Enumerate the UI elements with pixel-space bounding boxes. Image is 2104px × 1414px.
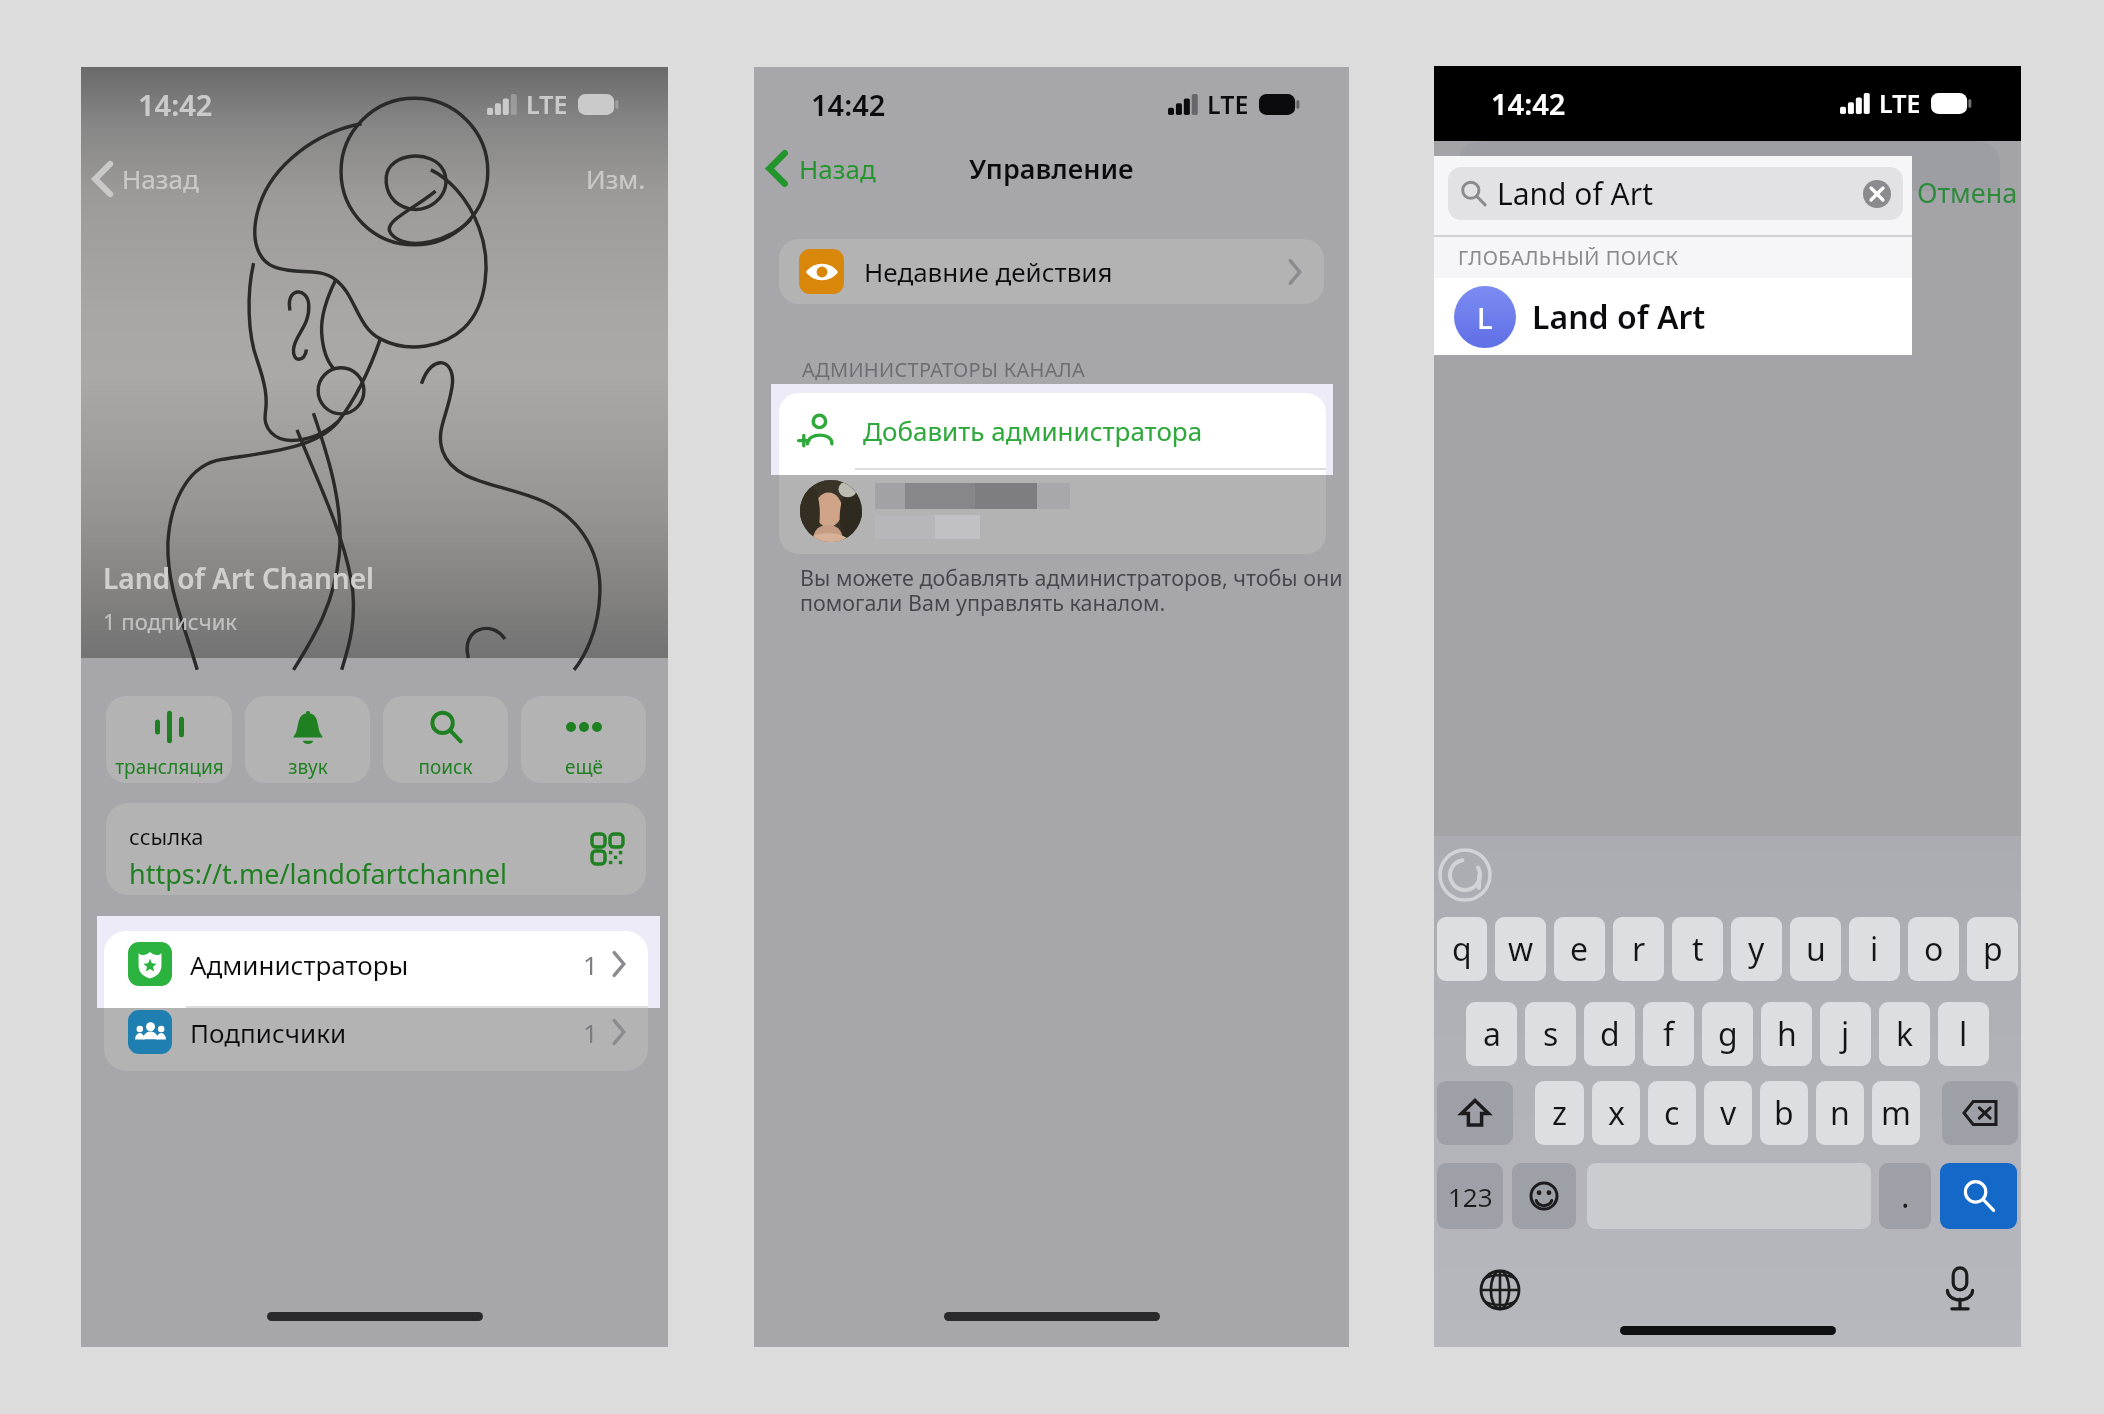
staticText: . [1901, 1174, 1910, 1218]
button[interactable]: j [1820, 1002, 1871, 1066]
staticText: i [1870, 927, 1879, 971]
button[interactable]: Назад [766, 151, 878, 186]
staticText: Администраторы [190, 947, 409, 982]
button[interactable]: n [1816, 1081, 1864, 1145]
staticText: p [1983, 927, 2003, 971]
button[interactable]: q [1437, 917, 1487, 981]
staticText: Изм. [586, 161, 646, 196]
staticText: 1 подписчик [103, 606, 237, 636]
staticText: x [1608, 1091, 1625, 1135]
staticText: n [1830, 1091, 1850, 1135]
button[interactable]: Dictate [1932, 1258, 1988, 1320]
button[interactable]: s [1525, 1002, 1576, 1066]
staticText: ещё [565, 754, 603, 780]
button[interactable]: u [1790, 917, 1841, 981]
button[interactable]: Search [1940, 1163, 2017, 1229]
button[interactable]: p [1967, 917, 2018, 981]
button[interactable]: Администраторы [104, 931, 648, 997]
staticText: j [1841, 1012, 1850, 1056]
staticText: 1 [583, 947, 598, 982]
button[interactable]: Add admin [779, 393, 1326, 468]
other: Add admin [797, 411, 837, 451]
button[interactable]: Назад [92, 161, 201, 196]
staticText: LTE [1879, 86, 1921, 120]
staticText: 14:42 [811, 85, 886, 124]
button[interactable]: b [1760, 1081, 1808, 1145]
button[interactable]: трансляция [106, 696, 232, 783]
button[interactable]: Недавние действия [779, 239, 1324, 304]
button[interactable]: Clear search [1863, 180, 1891, 208]
button[interactable]: f [1643, 1002, 1694, 1066]
staticText: Добавить администратора [863, 413, 1203, 448]
button[interactable]: Подписчики [104, 999, 648, 1065]
staticText: r [1632, 927, 1646, 971]
button[interactable]: z [1535, 1081, 1584, 1145]
button[interactable]: t [1672, 917, 1723, 981]
staticText: e [1570, 927, 1589, 971]
staticText: b [1774, 1091, 1794, 1135]
button[interactable]: Emoji [1512, 1163, 1576, 1229]
staticText: Назад [122, 161, 199, 196]
staticText: Управление [969, 150, 1134, 187]
staticText: Администраторы [190, 947, 409, 982]
staticText: поиск [418, 754, 473, 780]
staticText: LTE [1207, 87, 1249, 121]
staticText: z [1552, 1091, 1568, 1135]
button[interactable]: a [1466, 1002, 1517, 1066]
staticText: a [1483, 1012, 1501, 1056]
button[interactable]: Изм. [586, 161, 646, 196]
button[interactable]: ссылка [106, 803, 646, 895]
staticText: v [1720, 1091, 1737, 1135]
button[interactable]: m [1872, 1081, 1920, 1145]
button[interactable]: звук [245, 696, 370, 783]
button[interactable] [779, 468, 1326, 554]
button[interactable]: v [1704, 1081, 1752, 1145]
staticText: трансляция [115, 754, 224, 780]
staticText: Недавние действия [864, 254, 1113, 289]
button[interactable]: o [1908, 917, 1959, 981]
button[interactable]: 123 [1437, 1163, 1503, 1229]
button[interactable]: Land of Art [1448, 167, 1903, 220]
staticText: f [1663, 1012, 1675, 1056]
button[interactable]: Change keyboard [1472, 1262, 1528, 1318]
button[interactable]: Backspace [1942, 1081, 2018, 1145]
button[interactable]: L [1434, 278, 1912, 355]
button[interactable]: h [1761, 1002, 1812, 1066]
button[interactable]: ещё [521, 696, 646, 783]
button[interactable]: . [1879, 1163, 1931, 1229]
staticText: c [1664, 1091, 1680, 1135]
staticText: g [1718, 1012, 1738, 1056]
staticText: o [1924, 927, 1944, 971]
button[interactable]: k [1879, 1002, 1930, 1066]
button[interactable]: Отмена [1917, 174, 2018, 211]
button[interactable]: c [1648, 1081, 1696, 1145]
staticText: q [1452, 927, 1472, 971]
staticText: звук [288, 754, 328, 780]
button[interactable]: x [1592, 1081, 1640, 1145]
staticText: y [1748, 927, 1765, 971]
button[interactable]: поиск [383, 696, 508, 783]
staticText: L [1477, 298, 1493, 337]
button[interactable]: Shift [1437, 1081, 1513, 1145]
button[interactable]: g [1702, 1002, 1753, 1066]
staticText: АДМИНИСТРАТОРЫ КАНАЛА [802, 356, 1086, 383]
button[interactable]: Show QR code [580, 822, 634, 876]
button[interactable]: y [1731, 917, 1782, 981]
button[interactable]: i [1849, 917, 1900, 981]
staticText: 14:42 [138, 85, 213, 124]
staticText: Отмена [1917, 174, 2018, 211]
staticText: Вы можете добавлять администраторов, что… [800, 563, 1348, 617]
button[interactable]: r [1613, 917, 1664, 981]
button[interactable]: w [1495, 917, 1546, 981]
staticText: Land of Art [1497, 173, 1653, 214]
button[interactable]: l [1938, 1002, 1989, 1066]
button[interactable]: d [1584, 1002, 1635, 1066]
staticText: 123 [1448, 1179, 1493, 1214]
staticText: 1 [583, 947, 598, 982]
staticText: 14:42 [1491, 84, 1566, 123]
button[interactable]: e [1554, 917, 1605, 981]
button[interactable]: Администраторы [104, 931, 648, 997]
staticText: h [1777, 1012, 1797, 1056]
staticText: t [1692, 927, 1704, 971]
